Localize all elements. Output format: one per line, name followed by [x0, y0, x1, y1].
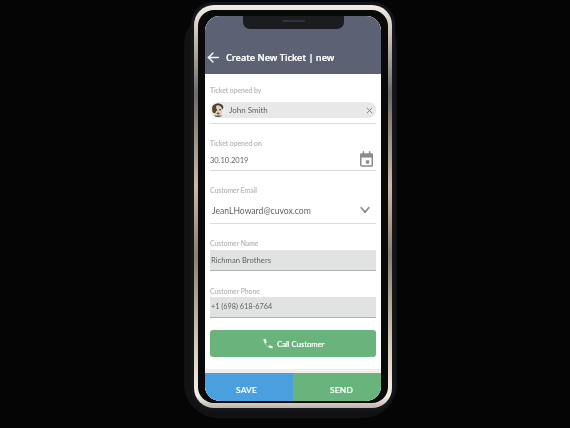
button[interactable]: Pick date: [360, 151, 373, 167]
button[interactable]: Back: [207, 48, 219, 67]
button[interactable]: Richman Brothers: [210, 250, 376, 271]
staticText: 30.10.2019: [210, 156, 249, 165]
staticText: Call Customer: [277, 339, 325, 348]
button[interactable]: Show email options: [360, 206, 370, 214]
staticText: SEND: [330, 385, 353, 395]
staticText: Ticket opened by: [210, 86, 262, 94]
staticText: Customer Phone: [210, 287, 260, 295]
button[interactable]: SEND: [293, 373, 381, 401]
staticText: SAVE: [236, 385, 257, 395]
button[interactable]: +1 (698) 618-6764: [210, 297, 376, 318]
button[interactable]: Call Customer: [210, 330, 376, 357]
staticText: JeanLHoward@cuvox.com: [212, 206, 311, 216]
button[interactable]: SAVE: [205, 373, 293, 401]
staticText: Create New Ticket | new: [226, 51, 335, 64]
staticText: John Smith: [229, 105, 268, 115]
staticText: +1 (698) 618-6764: [211, 302, 273, 311]
staticText: Ticket opened on: [210, 139, 262, 147]
button[interactable]: John Smith: [210, 102, 376, 118]
button[interactable]: Remove John Smith: [366, 107, 373, 114]
staticText: Customer Email: [210, 186, 257, 194]
staticText: Richman Brothers: [211, 255, 271, 264]
staticText: Customer Name: [210, 239, 259, 247]
